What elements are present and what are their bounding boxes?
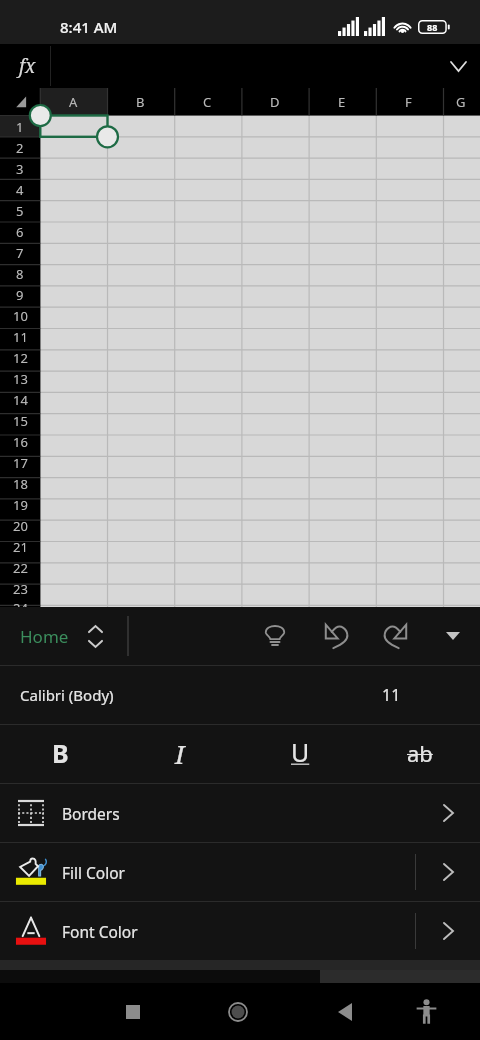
staticText: 11 [13,328,28,346]
staticText: 2 [16,139,24,157]
staticText: Font Color [62,921,138,942]
staticText: 9 [16,286,24,304]
staticText: U [291,735,310,769]
staticText: Home [20,625,69,648]
staticText: 20 [13,517,28,535]
staticText: 88 [427,21,438,33]
button[interactable]: Font Color options [416,902,480,960]
staticText: 24 [13,599,28,607]
button[interactable]: U [240,725,360,783]
staticText: 11 [382,684,401,706]
staticText: 8 [16,265,24,283]
staticText: ab [407,738,433,768]
staticText: C [203,93,212,111]
button[interactable]: Back [320,987,369,1036]
button[interactable]: Redo [366,607,426,665]
button[interactable]: Font Color [0,902,480,960]
staticText: 12 [13,349,28,367]
staticText: 13 [13,370,28,388]
staticText: F [405,93,412,111]
staticText: 7 [16,244,24,262]
staticText: 19 [13,496,28,514]
button[interactable]: Insert function [0,44,50,88]
staticText: 22 [13,559,28,577]
staticText: Borders [62,803,120,824]
staticText: 1 [16,118,24,136]
staticText: B [52,736,69,770]
staticText: Calibri (Body) [20,685,114,705]
staticText: fx [19,53,36,79]
button[interactable]: Calibri (Body) [0,666,480,724]
button[interactable]: ab [360,725,480,783]
staticText: 16 [13,433,28,451]
staticText: 8:41 AM [60,17,118,37]
staticText: A [69,93,78,111]
button[interactable]: Recents [108,987,157,1036]
staticText: B [136,93,145,111]
staticText: 10 [13,307,28,325]
button[interactable]: Home [20,607,102,665]
staticText: 17 [13,454,28,472]
staticText: 15 [13,412,28,430]
button[interactable]: Fill Color [0,843,480,901]
staticText: 6 [16,223,24,241]
staticText: 3 [16,160,24,178]
staticText: 23 [13,580,28,598]
staticText: 5 [16,202,24,220]
button[interactable]: Undo [305,607,366,665]
staticText: I [175,736,185,771]
staticText: 4 [16,181,24,199]
staticText: D [270,93,280,111]
button[interactable]: Borders [0,784,480,842]
button[interactable]: I [120,725,240,783]
staticText: G [456,93,466,111]
button[interactable]: Home [213,987,262,1036]
button[interactable]: B [0,725,120,783]
button[interactable]: Expand formula bar [436,44,480,88]
button[interactable]: Tell me what you want to do [245,607,305,665]
staticText: Fill Color [62,862,126,883]
staticText: 14 [13,391,28,409]
staticText: E [338,93,346,111]
staticText: 18 [13,475,28,493]
button[interactable]: Accessibility [402,987,451,1036]
button[interactable]: Collapse ribbon [426,607,480,665]
button[interactable]: Fill Color options [416,843,480,901]
button[interactable]: Borders options [416,784,480,842]
staticText: 21 [13,538,28,556]
